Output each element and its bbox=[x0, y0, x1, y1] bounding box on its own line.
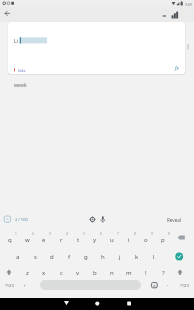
staticText: t bbox=[77, 236, 80, 244]
staticText: Reveal bbox=[167, 217, 182, 223]
staticText: fx bbox=[175, 65, 179, 71]
button[interactable]: z bbox=[19, 266, 35, 280]
button[interactable] bbox=[1, 8, 14, 20]
button[interactable]: l bbox=[146, 250, 162, 264]
button[interactable] bbox=[2, 266, 16, 279]
staticText: z bbox=[26, 269, 29, 277]
staticText: g bbox=[84, 253, 88, 261]
button[interactable]: c bbox=[53, 266, 69, 280]
staticText: p bbox=[161, 236, 165, 244]
button[interactable] bbox=[170, 9, 180, 21]
staticText: h bbox=[101, 253, 105, 261]
button[interactable] bbox=[171, 248, 188, 265]
staticText: w bbox=[25, 236, 30, 244]
button[interactable]: g bbox=[78, 250, 94, 264]
button[interactable]: u bbox=[104, 233, 120, 247]
button[interactable]: v bbox=[70, 266, 86, 280]
staticText: 2 bbox=[32, 232, 34, 236]
button[interactable]: . bbox=[163, 278, 173, 290]
staticText: e bbox=[42, 236, 46, 244]
staticText: i bbox=[128, 236, 130, 244]
staticText: v bbox=[76, 269, 80, 277]
button[interactable]: b bbox=[87, 266, 103, 280]
button[interactable]: ! bbox=[138, 266, 154, 280]
button[interactable]: t bbox=[70, 233, 86, 247]
staticText: Li bbox=[14, 37, 19, 44]
staticText: a bbox=[16, 253, 20, 261]
staticText: y bbox=[93, 236, 97, 244]
button[interactable]: x bbox=[36, 266, 52, 280]
staticText: f bbox=[68, 253, 71, 261]
staticText: n bbox=[110, 269, 114, 277]
staticText: c bbox=[60, 269, 63, 277]
button[interactable]: p bbox=[155, 233, 171, 247]
staticText: q bbox=[8, 236, 12, 244]
staticText: 9:09 bbox=[185, 2, 192, 6]
button[interactable]: w bbox=[19, 233, 35, 247]
button[interactable]: ?123 bbox=[0, 280, 18, 292]
button[interactable]: s bbox=[27, 250, 43, 264]
staticText: ? bbox=[162, 269, 165, 277]
button[interactable]: r bbox=[53, 233, 69, 247]
staticText: links bbox=[18, 68, 26, 73]
staticText: r bbox=[60, 236, 63, 244]
button[interactable] bbox=[99, 215, 107, 224]
staticText: 3 bbox=[49, 232, 51, 236]
button[interactable]: y bbox=[87, 233, 103, 247]
button[interactable] bbox=[160, 10, 169, 21]
staticText: 1 bbox=[15, 232, 17, 236]
button[interactable] bbox=[8, 22, 185, 74]
button[interactable]: Reveal bbox=[162, 214, 186, 226]
staticText: b bbox=[93, 269, 97, 277]
button[interactable]: o bbox=[138, 233, 154, 247]
staticText: ?123 bbox=[180, 283, 189, 289]
staticText: s bbox=[34, 253, 37, 261]
staticText: l bbox=[153, 253, 155, 261]
staticText: 2 / 100 bbox=[15, 217, 28, 222]
staticText: 5 bbox=[83, 232, 85, 236]
staticText: k bbox=[135, 253, 139, 261]
button[interactable] bbox=[40, 280, 141, 290]
button[interactable] bbox=[88, 215, 97, 224]
staticText: . bbox=[167, 280, 169, 288]
staticText: j bbox=[119, 253, 121, 261]
staticText: ?123 bbox=[5, 283, 14, 289]
button[interactable]: j bbox=[112, 250, 128, 264]
staticText: 4 bbox=[66, 232, 68, 236]
staticText: o bbox=[144, 236, 148, 244]
button[interactable]: i bbox=[121, 233, 137, 247]
staticText: week bbox=[14, 81, 27, 88]
button[interactable] bbox=[149, 280, 160, 291]
staticText: m bbox=[126, 269, 132, 277]
button[interactable]: e bbox=[36, 233, 52, 247]
staticText: 6 bbox=[100, 232, 102, 236]
button[interactable]: d bbox=[44, 250, 60, 264]
staticText: x bbox=[42, 269, 46, 277]
button[interactable]: n bbox=[104, 266, 120, 280]
staticText: d bbox=[50, 253, 54, 261]
button[interactable] bbox=[173, 266, 187, 279]
button[interactable]: h bbox=[95, 250, 111, 264]
button[interactable]: a bbox=[10, 250, 26, 264]
staticText: , bbox=[24, 280, 26, 288]
button[interactable]: k bbox=[129, 250, 145, 264]
button[interactable] bbox=[172, 231, 189, 245]
button[interactable]: , bbox=[20, 278, 30, 290]
button[interactable] bbox=[90, 298, 105, 310]
button[interactable]: q bbox=[2, 233, 18, 247]
staticText: 0 bbox=[168, 232, 170, 236]
button[interactable] bbox=[121, 298, 136, 310]
button[interactable]: fx bbox=[165, 62, 189, 74]
button[interactable]: ?123 bbox=[175, 280, 193, 292]
staticText: 8 bbox=[134, 232, 136, 236]
staticText: u bbox=[110, 236, 114, 244]
button[interactable] bbox=[2, 213, 32, 225]
button[interactable]: f bbox=[61, 250, 77, 264]
staticText: 7 bbox=[117, 232, 119, 236]
staticText: 9 bbox=[151, 232, 153, 236]
button[interactable]: ? bbox=[155, 266, 171, 280]
button[interactable] bbox=[59, 298, 74, 310]
staticText: ! bbox=[145, 269, 147, 277]
button[interactable]: m bbox=[121, 266, 137, 280]
